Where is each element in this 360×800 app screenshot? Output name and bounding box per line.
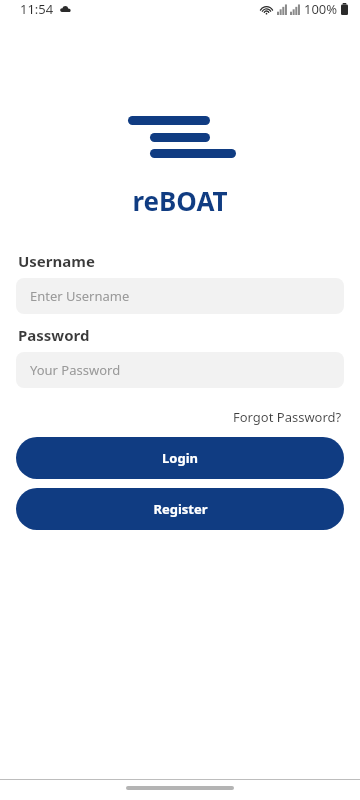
button[interactable]: Login (16, 437, 344, 479)
button[interactable]: Forgot Password? (231, 406, 344, 428)
staticText: Enter Username (30, 287, 130, 305)
staticText: 100% (304, 0, 338, 18)
staticText: Forgot Password? (233, 408, 342, 426)
staticText: Register (153, 500, 208, 518)
staticText: reBOAT (132, 183, 228, 218)
button[interactable]: Register (16, 488, 344, 530)
staticText: Your Password (30, 361, 121, 379)
staticText: Login (162, 449, 198, 467)
staticText: Password (18, 325, 90, 345)
button[interactable]: Your Password (16, 352, 344, 388)
staticText: 11:54 (20, 0, 54, 18)
staticText: Username (18, 251, 95, 271)
button[interactable]: Enter Username (16, 278, 344, 314)
